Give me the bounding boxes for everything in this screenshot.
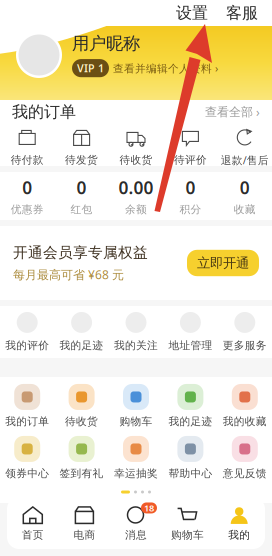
staticText: 0 bbox=[240, 176, 250, 199]
staticText: 开通会员享专属权益 bbox=[13, 243, 148, 261]
staticText: 查看并编辑个人资料 › bbox=[113, 61, 218, 75]
button[interactable]: 待发货 bbox=[54, 126, 109, 168]
button[interactable]: 我的订单 bbox=[0, 380, 54, 432]
staticText: › bbox=[253, 104, 260, 120]
staticText: 收藏 bbox=[234, 203, 256, 216]
staticText: 余额 bbox=[125, 203, 147, 216]
staticText: 我的关注 bbox=[114, 339, 158, 352]
button[interactable]: 退款/售后 bbox=[218, 126, 272, 168]
staticText: 优惠券 bbox=[11, 203, 44, 216]
staticText: 设置 bbox=[176, 3, 208, 23]
button[interactable]: 我的收藏 bbox=[218, 380, 272, 432]
staticText: 红包 bbox=[71, 203, 93, 216]
staticText: 0 bbox=[185, 176, 195, 199]
staticText: 待收货 bbox=[65, 415, 98, 428]
staticText: 领券中心 bbox=[5, 467, 49, 480]
button[interactable]: 18 bbox=[110, 497, 162, 549]
staticText: 消息 bbox=[125, 528, 147, 541]
staticText: 我的 bbox=[228, 528, 250, 541]
button[interactable]: 帮助中心 bbox=[163, 432, 218, 484]
button[interactable]: 0.00 bbox=[109, 172, 163, 220]
staticText: 0 bbox=[77, 176, 87, 199]
button[interactable]: 领券中心 bbox=[0, 432, 54, 484]
button[interactable]: 我的关注 bbox=[109, 306, 163, 358]
staticText: 用户昵称 bbox=[72, 33, 140, 54]
button[interactable]: 0 bbox=[163, 172, 218, 220]
button[interactable]: 电商 bbox=[59, 497, 110, 549]
staticText: 待发货 bbox=[65, 153, 98, 166]
staticText: 待付款 bbox=[11, 153, 44, 166]
button[interactable]: 0 bbox=[0, 172, 54, 220]
button[interactable]: 设置 bbox=[172, 0, 212, 27]
staticText: 我的评价 bbox=[5, 339, 49, 352]
staticText: 退款/售后 bbox=[221, 153, 269, 167]
staticText: 我的足迹 bbox=[168, 415, 212, 428]
staticText: 地址管理 bbox=[168, 339, 212, 352]
button[interactable]: 地址管理 bbox=[163, 306, 218, 358]
staticText: 购物车 bbox=[119, 415, 152, 428]
staticText: 首页 bbox=[22, 528, 44, 541]
staticText: 电商 bbox=[73, 528, 95, 541]
button[interactable]: 购物车 bbox=[162, 497, 213, 549]
staticText: 我的订单 bbox=[5, 415, 49, 428]
staticText: 0.00 bbox=[118, 176, 153, 199]
button[interactable]: 开通会员享专属权益 bbox=[0, 226, 272, 300]
button[interactable]: 意见反馈 bbox=[218, 432, 272, 484]
staticText: 我的足迹 bbox=[60, 339, 104, 352]
button[interactable]: 待评价 bbox=[163, 126, 218, 168]
staticText: 更多服务 bbox=[223, 339, 267, 352]
button[interactable]: 购物车 bbox=[109, 380, 163, 432]
button[interactable]: 待收货 bbox=[109, 126, 163, 168]
button[interactable]: 我的足迹 bbox=[54, 306, 109, 358]
staticText: 0 bbox=[22, 176, 32, 199]
button[interactable]: 幸运抽奖 bbox=[109, 432, 163, 484]
staticText: 我的收藏 bbox=[223, 415, 267, 428]
button[interactable]: 签到有礼 bbox=[54, 432, 109, 484]
staticText: 客服 bbox=[226, 3, 258, 23]
staticText: 待收货 bbox=[119, 153, 152, 166]
staticText: 立即开通 bbox=[197, 255, 249, 271]
button[interactable]: 0 bbox=[54, 172, 109, 220]
button[interactable]: 我的订单 bbox=[0, 98, 272, 126]
button[interactable]: 首页 bbox=[7, 497, 59, 549]
button[interactable]: 我的评价 bbox=[0, 306, 54, 358]
staticText: 查看全部 bbox=[205, 105, 253, 119]
button[interactable]: 0 bbox=[218, 172, 272, 220]
button[interactable]: 我的足迹 bbox=[163, 380, 218, 432]
staticText: 18 bbox=[144, 502, 154, 514]
button[interactable]: 更多服务 bbox=[218, 306, 272, 358]
staticText: 帮助中心 bbox=[168, 467, 212, 480]
button[interactable]: 待收货 bbox=[54, 380, 109, 432]
staticText: 签到有礼 bbox=[60, 467, 104, 480]
staticText: 每月最高可省 ¥68 元 bbox=[13, 266, 124, 282]
staticText: 我的订单 bbox=[12, 102, 76, 122]
button[interactable]: 待付款 bbox=[0, 126, 54, 168]
staticText: 意见反馈 bbox=[223, 467, 267, 480]
button[interactable]: 客服 bbox=[222, 0, 262, 27]
button[interactable]: 我的 bbox=[213, 497, 265, 549]
staticText: 待评价 bbox=[174, 153, 207, 166]
staticText: 购物车 bbox=[171, 528, 204, 541]
staticText: 幸运抽奖 bbox=[114, 467, 158, 480]
staticText: VIP 1 bbox=[77, 61, 104, 75]
staticText: 积分 bbox=[179, 203, 201, 216]
